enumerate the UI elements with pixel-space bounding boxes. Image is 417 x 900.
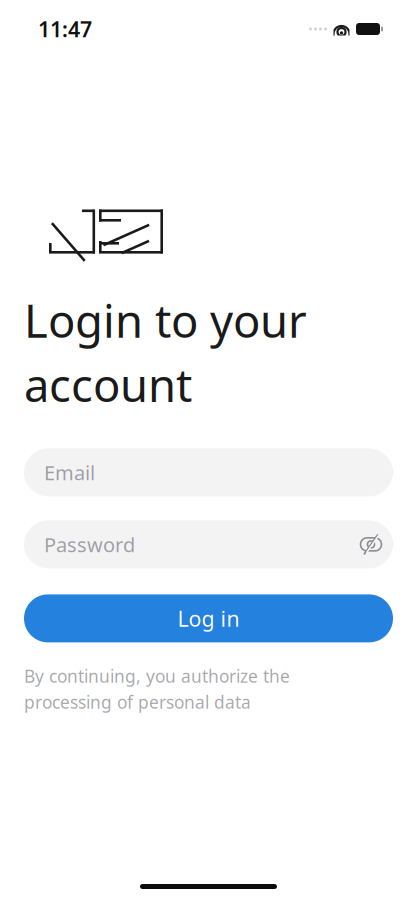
staticText: account <box>24 354 192 414</box>
staticText: By continuing, you authorize the <box>24 664 290 687</box>
button[interactable]: Email <box>24 448 393 496</box>
button[interactable]: Log in <box>24 594 393 642</box>
staticText: Log in <box>177 604 239 632</box>
staticText: 11:47 <box>38 15 92 43</box>
staticText: Password <box>44 531 135 558</box>
staticText: Login to your <box>24 290 307 350</box>
button[interactable]: Password <box>24 520 349 568</box>
staticText: Email <box>44 459 95 486</box>
staticText: processing of personal data <box>24 690 251 713</box>
button[interactable]: Show password <box>349 520 393 568</box>
